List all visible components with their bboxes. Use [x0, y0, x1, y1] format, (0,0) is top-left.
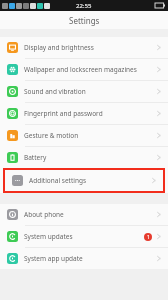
staticText: Wallpaper and lockscreen magazines	[24, 65, 137, 74]
button[interactable]: System updates	[0, 226, 168, 247]
staticText: Display and brightness	[24, 43, 94, 52]
staticText: About phone	[24, 210, 64, 219]
staticText: 1	[147, 234, 150, 241]
other: Open	[157, 44, 161, 51]
staticText: Fingerprint and password	[24, 109, 103, 118]
other: Open	[157, 66, 161, 73]
staticText: Sound and vibration	[24, 87, 86, 96]
button[interactable]: Additional settings	[5, 170, 163, 191]
button[interactable]: Fingerprint and password	[0, 103, 168, 124]
button[interactable]: Display and brightness	[0, 37, 168, 58]
staticText: Additional settings	[29, 176, 87, 185]
button[interactable]: System app update	[0, 248, 168, 269]
button[interactable]: About phone	[0, 204, 168, 225]
other: Open	[157, 154, 161, 161]
staticText: 22:55	[76, 2, 92, 10]
other: Open	[157, 255, 161, 262]
other: Open	[157, 132, 161, 139]
staticText: Settings	[69, 15, 100, 26]
other: Open	[157, 233, 161, 240]
staticText: System app update	[24, 254, 83, 263]
staticText: Battery	[24, 153, 47, 162]
staticText: System updates	[24, 232, 73, 241]
other: Open	[157, 110, 161, 117]
other: Open	[157, 88, 161, 95]
button[interactable]: Gesture & motion	[0, 125, 168, 146]
button[interactable]: Sound and vibration	[0, 81, 168, 102]
button[interactable]: Wallpaper and lockscreen magazines	[0, 59, 168, 80]
other: Open	[157, 211, 161, 218]
other: Open	[152, 177, 156, 184]
staticText: Gesture & motion	[24, 131, 79, 140]
button[interactable]: Battery	[0, 147, 168, 168]
